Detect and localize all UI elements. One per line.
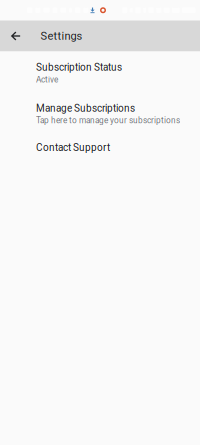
button[interactable]: Back	[0, 20, 31, 51]
staticText: Contact Support	[36, 142, 110, 153]
staticText: Manage Subscriptions	[36, 102, 135, 114]
staticText: Tap here to manage your subscriptions	[36, 116, 180, 125]
button[interactable]: Subscription Status	[0, 51, 200, 84]
staticText: Active	[36, 75, 58, 84]
staticText: Subscription Status	[36, 61, 122, 73]
staticText: Settings	[40, 29, 82, 42]
button[interactable]: Manage Subscriptions	[0, 84, 200, 125]
button[interactable]: Contact Support	[0, 125, 200, 153]
